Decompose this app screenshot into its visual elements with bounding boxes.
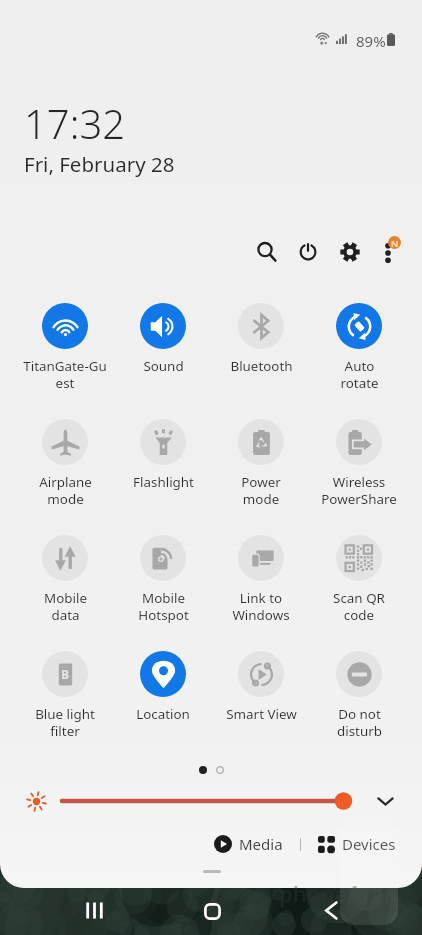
staticText: Wireless PowerShare bbox=[321, 473, 397, 508]
staticText: Media bbox=[239, 834, 283, 854]
staticText: Power mode bbox=[241, 473, 281, 508]
staticText: Do not disturb bbox=[337, 705, 382, 740]
button[interactable]: Mobile Hotspot bbox=[114, 535, 212, 624]
button[interactable]: Flashlight bbox=[114, 419, 212, 491]
button[interactable]: Expand bbox=[369, 785, 401, 817]
button[interactable]: Media bbox=[210, 830, 287, 858]
button[interactable]: Power mode bbox=[212, 419, 310, 508]
button[interactable]: Sound bbox=[114, 303, 212, 375]
button[interactable]: Mobile data bbox=[16, 535, 114, 624]
button[interactable]: Back bbox=[308, 888, 352, 932]
button[interactable]: Auto rotate bbox=[310, 303, 408, 392]
button[interactable]: Bluetooth bbox=[212, 303, 310, 375]
button[interactable]: More options bbox=[374, 235, 408, 269]
button[interactable]: Airplane mode bbox=[16, 419, 114, 508]
button[interactable]: Do not disturb bbox=[310, 651, 408, 740]
button[interactable]: Home bbox=[190, 889, 234, 933]
staticText: 17:32 bbox=[24, 96, 126, 150]
staticText: TitanGate-Gu est bbox=[23, 357, 107, 392]
button[interactable]: Wireless PowerShare bbox=[310, 419, 408, 508]
staticText: Bluetooth bbox=[230, 357, 293, 375]
staticText: Sound bbox=[143, 357, 184, 375]
staticText: Flashlight bbox=[133, 473, 194, 491]
staticText: Devices bbox=[342, 834, 396, 854]
button[interactable]: Settings bbox=[333, 235, 367, 269]
staticText: Airplane mode bbox=[39, 473, 92, 508]
staticText: Auto rotate bbox=[340, 357, 379, 392]
button[interactable]: B bbox=[16, 651, 114, 740]
button[interactable]: Smart View bbox=[212, 651, 310, 723]
button[interactable]: Power off bbox=[291, 235, 325, 269]
button[interactable]: Scan QR code bbox=[310, 535, 408, 624]
button[interactable]: Location bbox=[114, 651, 212, 723]
button[interactable]: Brightness bbox=[20, 785, 52, 817]
staticText: Smart View bbox=[226, 705, 297, 723]
button[interactable]: Search bbox=[250, 235, 284, 269]
staticText: Location bbox=[136, 705, 190, 723]
button[interactable]: Link to Windows bbox=[212, 535, 310, 624]
button[interactable]: Devices bbox=[314, 830, 400, 858]
staticText: Mobile Hotspot bbox=[138, 589, 189, 624]
staticText: Mobile data bbox=[44, 589, 87, 624]
staticText: Blue light filter bbox=[35, 705, 95, 740]
staticText: phoneArena bbox=[279, 878, 411, 908]
staticText: N bbox=[391, 237, 399, 249]
staticText: Scan QR code bbox=[333, 589, 385, 624]
staticText: Link to Windows bbox=[232, 589, 290, 624]
staticText: 89% bbox=[356, 31, 386, 51]
staticText: B bbox=[61, 666, 69, 682]
button[interactable]: TitanGate-Gu est bbox=[16, 303, 114, 392]
staticText: Fri, February 28 bbox=[24, 150, 175, 178]
button[interactable]: Recents bbox=[72, 888, 116, 932]
